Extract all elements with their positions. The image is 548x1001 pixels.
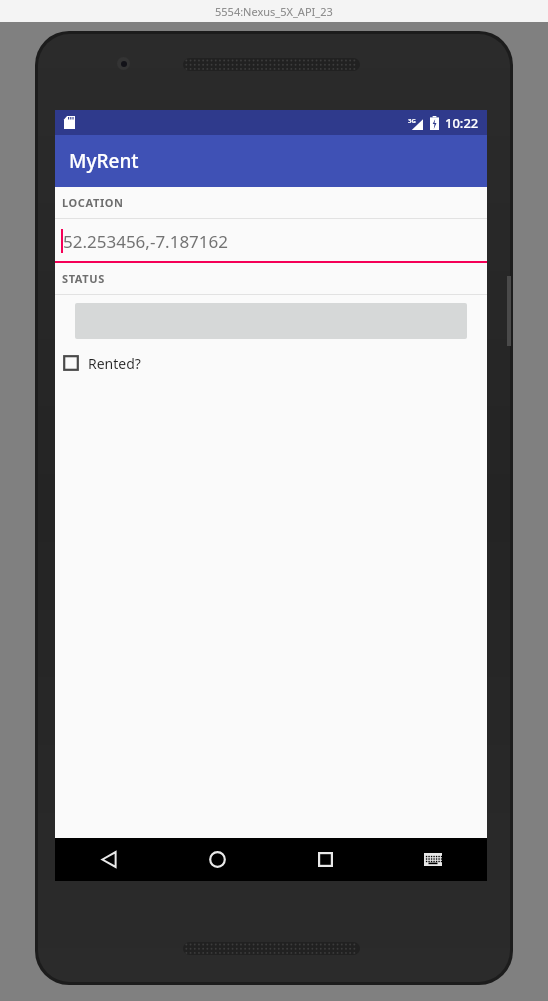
- staticText: 3G: [408, 117, 416, 125]
- staticText: MyRent: [69, 148, 139, 174]
- button[interactable]: 52.253456,-7.187162: [55, 219, 487, 263]
- staticText: LOCATION: [62, 195, 124, 210]
- button[interactable]: Rented?: [55, 348, 487, 378]
- button[interactable]: Home: [163, 838, 271, 881]
- staticText: 52.253456,-7.187162: [63, 230, 229, 253]
- staticText: STATUS: [62, 271, 105, 286]
- staticText: Rented?: [88, 354, 141, 373]
- button[interactable]: Show keyboard: [379, 838, 487, 881]
- button[interactable]: Recent apps: [271, 838, 379, 881]
- button[interactable]: MyRent: [55, 135, 487, 187]
- staticText: 10:22: [445, 114, 479, 132]
- staticText: 5554:Nexus_5X_API_23: [215, 4, 333, 19]
- button[interactable]: Back: [55, 838, 163, 881]
